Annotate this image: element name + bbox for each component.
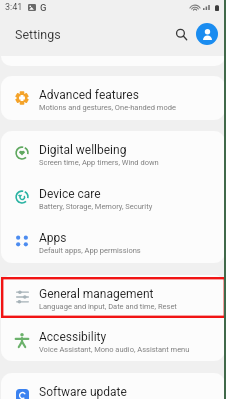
staticText: General management — [39, 287, 154, 301]
staticText: 3:41 — [5, 2, 23, 13]
button[interactable]: Account — [196, 23, 218, 45]
staticText: Default apps, App permissions — [39, 246, 141, 255]
button[interactable]: Accessibility — [1, 318, 225, 361]
button[interactable]: General management — [1, 275, 225, 318]
staticText: Motions and gestures, One-handed mode — [39, 103, 176, 112]
staticText: Screen time, App timers, Wind down — [39, 158, 159, 167]
staticText: Device care — [39, 187, 101, 201]
staticText: Battery, Storage, Memory, Security — [39, 202, 153, 211]
staticText: Settings — [15, 27, 61, 42]
staticText: Digital wellbeing — [39, 143, 127, 157]
button[interactable] — [1, 56, 225, 66]
button[interactable]: Search — [169, 22, 193, 46]
button[interactable]: Device care — [1, 175, 225, 219]
button[interactable]: Apps — [1, 219, 225, 263]
staticText: Language and input, Date and time, Reset — [39, 302, 177, 311]
staticText: Advanced features — [39, 88, 139, 102]
button[interactable]: Advanced features — [1, 76, 225, 120]
staticText: Voice Assistant, Mono audio, Assistant m… — [39, 345, 190, 354]
button[interactable]: Digital wellbeing — [1, 131, 225, 175]
staticText: G — [40, 2, 47, 13]
staticText: Software update — [39, 385, 127, 399]
staticText: Accessibility — [39, 330, 107, 344]
staticText: Apps — [39, 231, 67, 245]
button[interactable]: Software update — [1, 373, 225, 399]
